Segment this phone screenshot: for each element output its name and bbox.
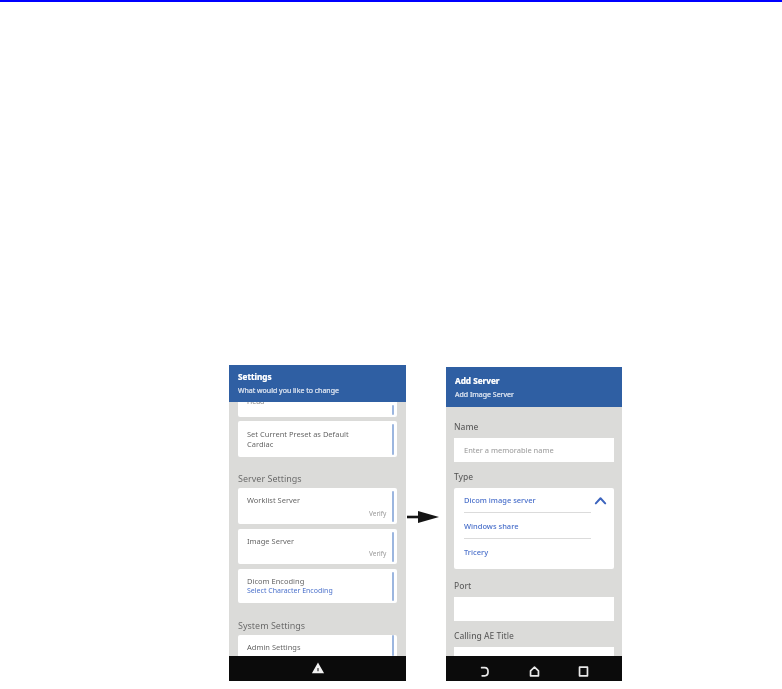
button[interactable]: Enter a memorable name — [454, 438, 614, 462]
staticText: Settings — [238, 371, 272, 382]
button[interactable]: Worklist Server — [238, 488, 397, 524]
button[interactable]: Home — [530, 667, 539, 676]
button[interactable]: Recents — [579, 667, 588, 676]
button[interactable]: Windows share — [454, 513, 614, 538]
button[interactable]: Image Server — [238, 529, 397, 564]
staticText: Windows share — [464, 521, 519, 531]
button[interactable]: Back — [311, 662, 325, 676]
staticText: Calling AE Title — [454, 630, 514, 642]
staticText: What would you like to change — [238, 386, 339, 396]
button[interactable]: Admin Settings — [238, 635, 397, 656]
staticText: Set Current Preset as Default — [247, 429, 349, 439]
staticText: Admin Settings — [247, 642, 301, 652]
button[interactable]: Back — [480, 667, 489, 676]
staticText: Head — [247, 402, 265, 407]
button[interactable]: Dicom Encoding — [238, 569, 397, 603]
staticText: Verify — [369, 549, 387, 558]
staticText: Enter a memorable name — [464, 445, 554, 455]
button[interactable]: Head — [238, 402, 397, 417]
staticText: Port — [454, 580, 472, 592]
staticText: Add Server — [455, 375, 500, 386]
staticText: Type — [454, 471, 474, 483]
staticText: Verify — [369, 509, 387, 518]
staticText: Dicom image server — [464, 495, 536, 505]
other: Collapse — [595, 495, 606, 506]
staticText: Tricery — [464, 547, 489, 557]
button[interactable]: Tricery — [454, 539, 614, 564]
staticText: Add Image Server — [455, 390, 514, 400]
staticText: System Settings — [238, 619, 306, 631]
staticText: Dicom Encoding — [247, 576, 305, 586]
staticText: Worklist Server — [247, 495, 301, 505]
staticText: Name — [454, 421, 479, 433]
staticText: Select Character Encoding — [247, 586, 333, 596]
staticText: Server Settings — [238, 472, 302, 484]
button[interactable]: Set Current Preset as Default — [238, 421, 397, 457]
staticText: Cardiac — [247, 439, 274, 449]
staticText: Image Server — [247, 536, 295, 546]
button[interactable]: Dicom image server — [454, 488, 614, 512]
